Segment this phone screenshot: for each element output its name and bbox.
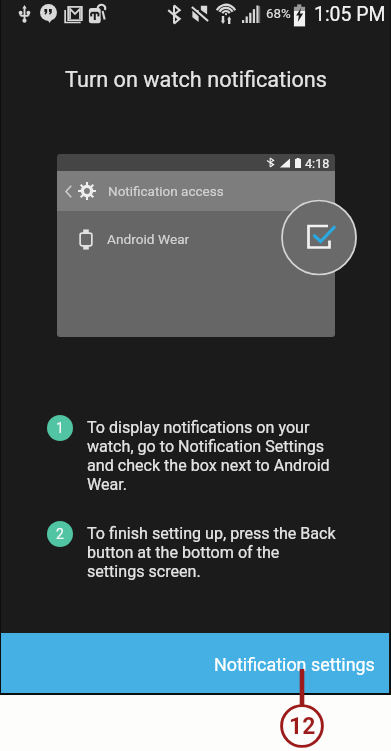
staticText: To finish setting up, press the Back: [87, 524, 336, 543]
staticText: Notification access: [108, 183, 224, 199]
staticText: button at the bottom of the: [87, 543, 280, 562]
staticText: Notification settings: [214, 654, 375, 675]
staticText: 2: [56, 526, 64, 542]
staticText: 1:05 PM: [314, 3, 386, 26]
staticText: 12: [289, 713, 316, 740]
staticText: watch, go to Notification Settings: [87, 437, 324, 456]
button[interactable]: Notification access: [57, 171, 335, 211]
button[interactable]: Android Wear checkbox: [281, 199, 358, 276]
button[interactable]: Notification settings: [1, 633, 389, 693]
staticText: To display notifications on your: [87, 418, 310, 437]
button[interactable]: Android Wear: [57, 213, 335, 265]
staticText: Turn on watch notifications: [65, 67, 327, 92]
staticText: 68%: [266, 6, 291, 22]
staticText: 4:18: [305, 156, 330, 171]
staticText: Android Wear: [107, 231, 190, 247]
staticText: and check the box next to Android: [87, 456, 330, 475]
staticText: Wear.: [87, 475, 128, 494]
staticText: settings screen.: [87, 562, 201, 581]
staticText: 1: [56, 420, 64, 436]
